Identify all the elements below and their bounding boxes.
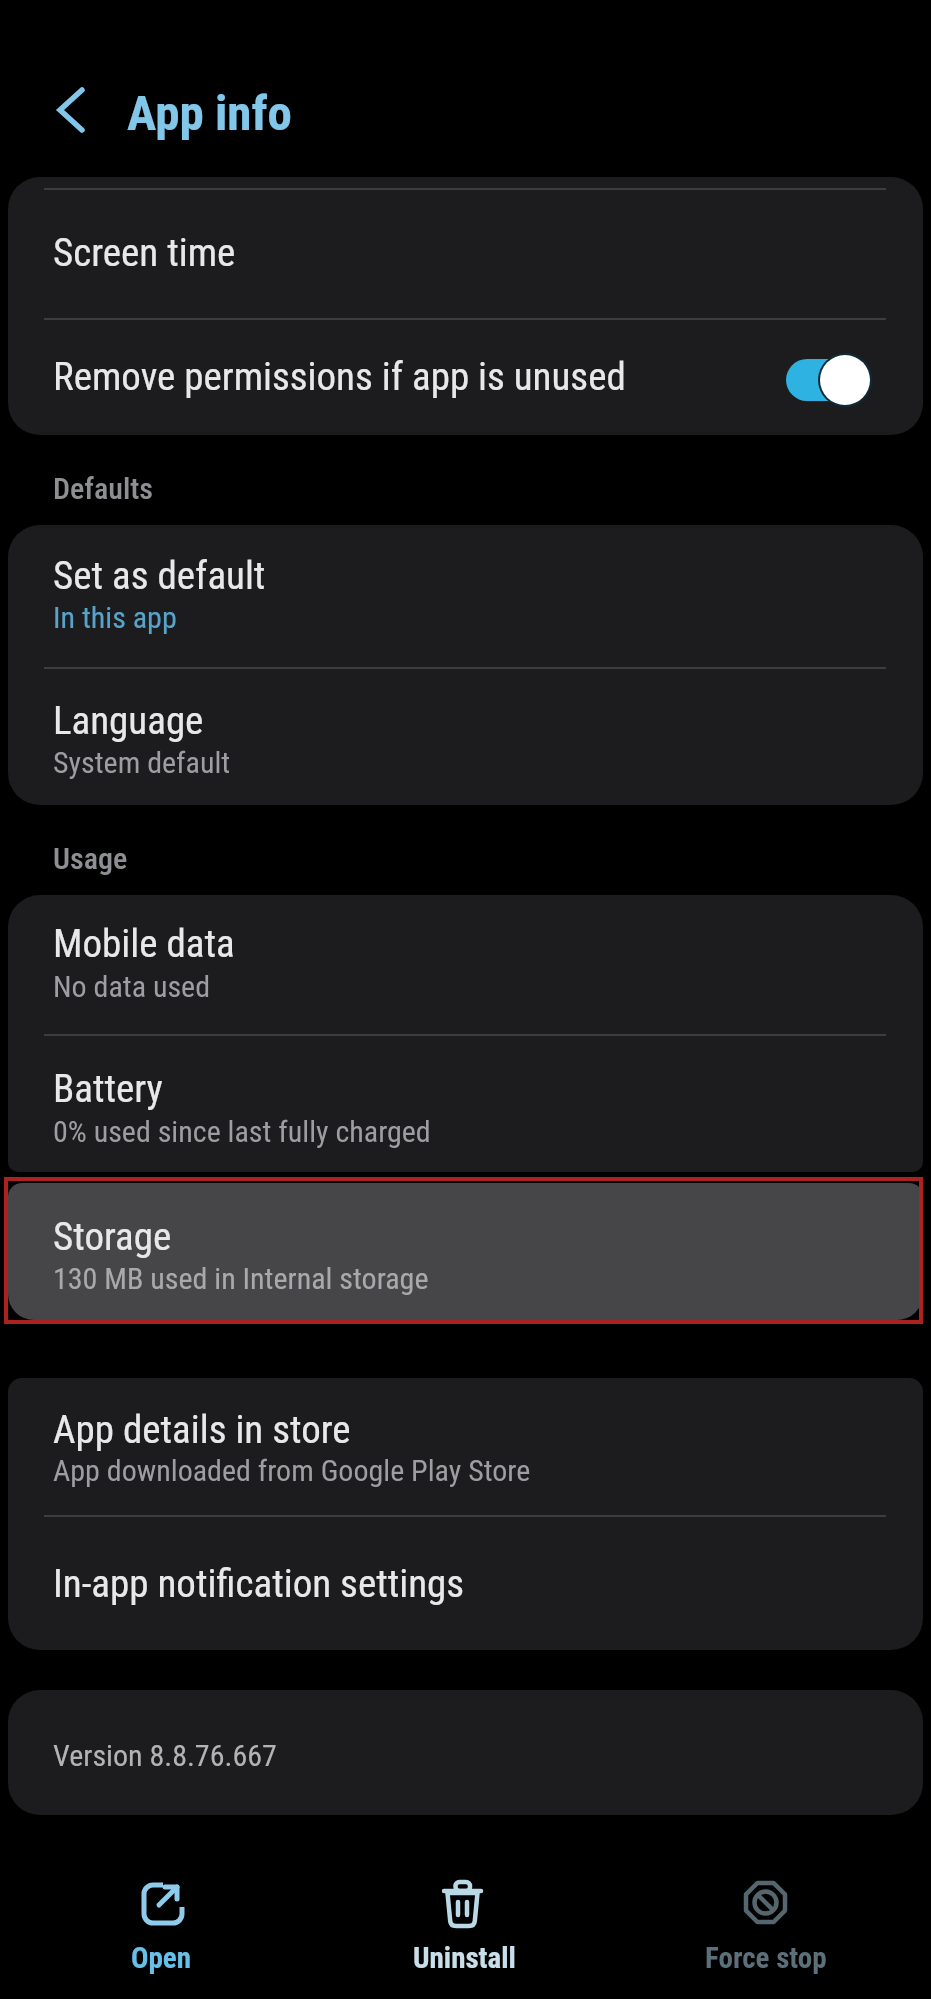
staticText: System default: [53, 745, 231, 780]
staticText: Version 8.8.76.667: [53, 1738, 277, 1773]
staticText: App downloaded from Google Play Store: [53, 1453, 531, 1488]
button[interactable]: [8, 1183, 923, 1320]
button[interactable]: [8, 1515, 923, 1650]
button[interactable]: Open: [111, 1868, 211, 1988]
button[interactable]: [8, 318, 923, 435]
staticText: Defaults: [53, 471, 154, 506]
staticText: Set as default: [53, 553, 266, 599]
button[interactable]: [8, 895, 923, 1034]
staticText: 130 MB used in Internal storage: [53, 1261, 429, 1296]
staticText: App details in store: [53, 1407, 351, 1453]
staticText: Screen time: [53, 230, 236, 276]
staticText: In this app: [53, 600, 177, 635]
button[interactable]: Force stop: [676, 1868, 856, 1988]
staticText: 0% used since last fully charged: [53, 1114, 431, 1149]
button[interactable]: [8, 188, 923, 318]
staticText: Language: [53, 698, 204, 744]
button[interactable]: [40, 86, 88, 134]
staticText: In-app notification settings: [53, 1561, 465, 1607]
staticText: Usage: [53, 841, 128, 876]
staticText: No data used: [53, 969, 211, 1004]
button[interactable]: [8, 1034, 923, 1172]
staticText: Uninstall: [413, 1941, 516, 1975]
staticText: Open: [131, 1941, 192, 1975]
button[interactable]: Uninstall: [394, 1868, 534, 1988]
button[interactable]: [8, 667, 923, 805]
staticText: Mobile data: [53, 921, 235, 967]
button[interactable]: [8, 1690, 923, 1815]
button[interactable]: [786, 359, 869, 401]
button[interactable]: [8, 525, 923, 667]
staticText: App info: [127, 85, 292, 142]
staticText: Battery: [53, 1066, 163, 1112]
button[interactable]: [8, 1378, 923, 1515]
staticText: Remove permissions if app is unused: [53, 354, 626, 400]
staticText: Storage: [53, 1214, 172, 1260]
staticText: Force stop: [705, 1941, 827, 1975]
